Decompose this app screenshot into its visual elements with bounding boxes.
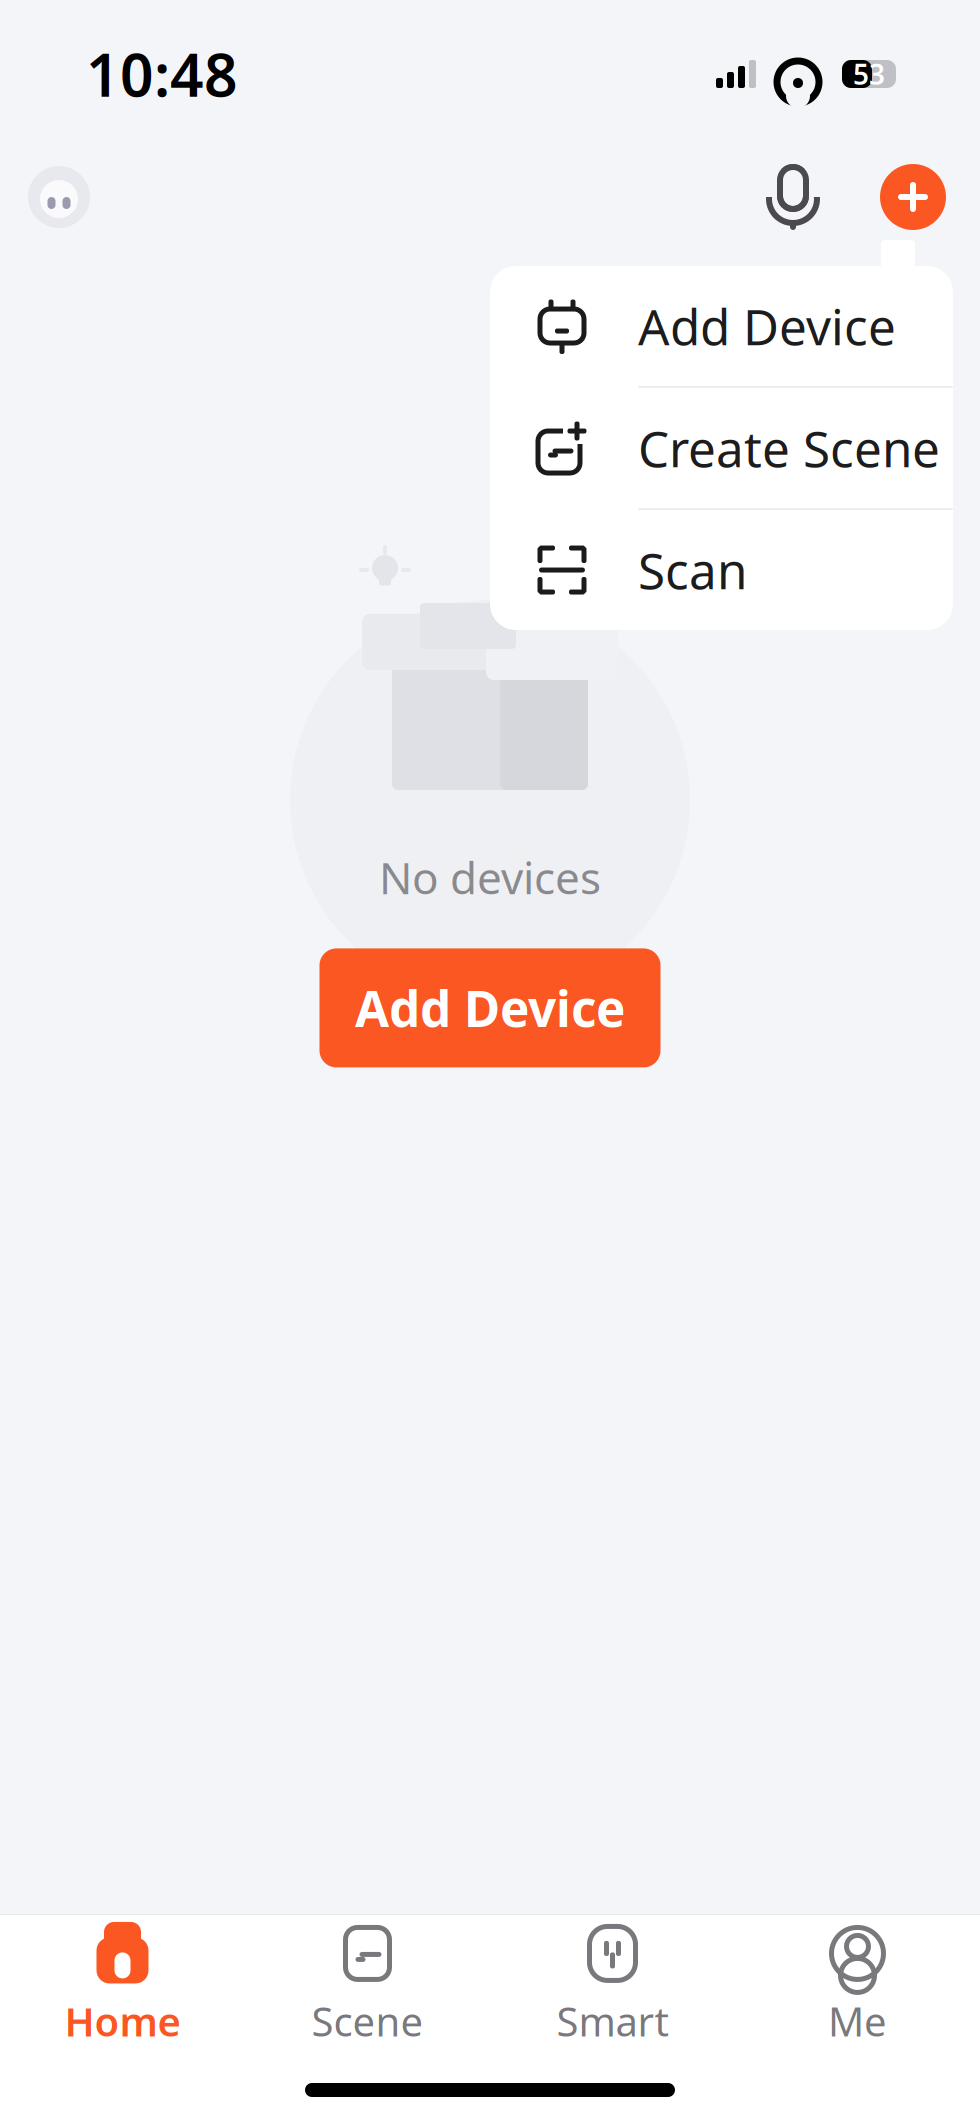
button[interactable]: Add Device [319,948,660,1067]
staticText: 10:48 [86,35,238,113]
button[interactable]: Create Scene [490,388,953,508]
staticText: Create Scene [638,415,940,481]
staticText: Add Device [355,975,625,1041]
staticText: Home [64,1994,180,2047]
staticText: Add Device [638,293,896,359]
staticText: 53 [853,55,885,93]
staticText: Scan [638,537,747,603]
button[interactable]: Voice [758,162,828,232]
button[interactable]: Add Device [490,266,953,386]
button[interactable]: Scene [245,1915,490,2055]
button[interactable]: Scan [490,510,953,630]
button[interactable]: Smart [490,1915,735,2055]
button[interactable]: Home [0,1915,245,2055]
staticText: No devices [379,848,601,906]
staticText: Scene [311,1994,423,2047]
button[interactable]: Me [735,1915,980,2055]
staticText: Smart [556,1994,668,2047]
button[interactable]: Profile [28,166,90,228]
button[interactable]: Add [880,164,946,230]
staticText: Me [828,1994,887,2047]
